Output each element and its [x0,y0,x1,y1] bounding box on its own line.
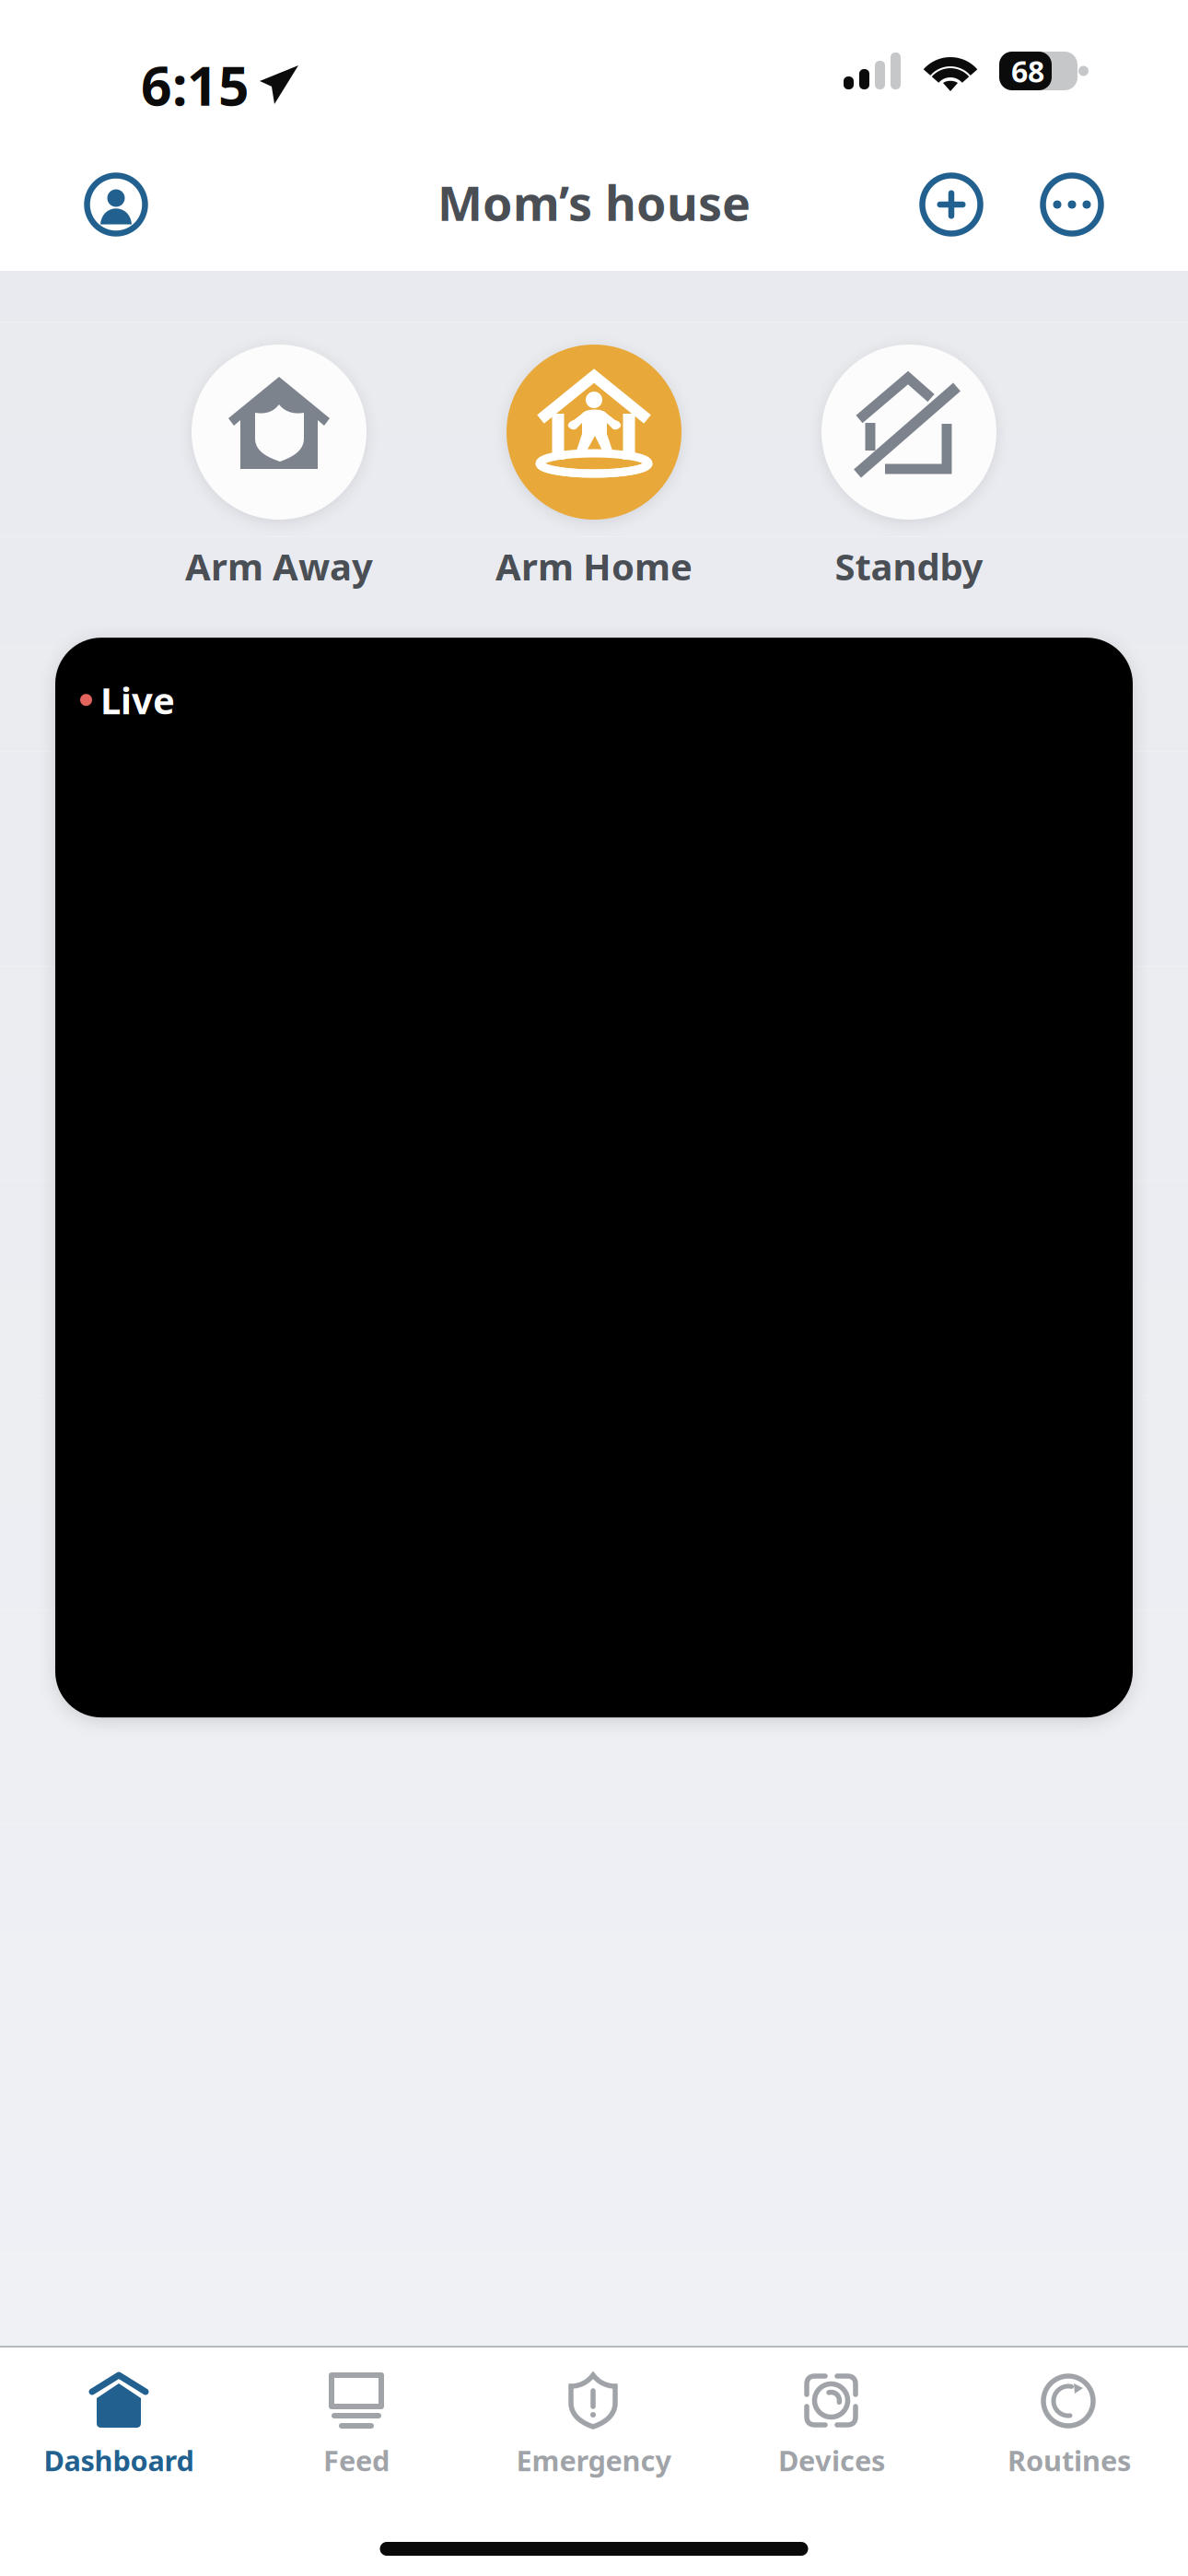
staticText: Standby [835,542,983,591]
staticText: Devices [778,2441,885,2479]
button[interactable]: Account [85,173,147,236]
staticText: Routines [1007,2441,1131,2479]
button[interactable]: Add device [920,173,983,236]
button[interactable]: Standby [751,345,1066,591]
staticText: Feed [323,2441,390,2479]
staticText: Arm Away [185,542,373,591]
button[interactable]: Devices [713,2348,950,2479]
staticText: Live [100,675,175,724]
button[interactable]: More options [1041,173,1103,236]
button[interactable]: Arm Home [437,345,751,591]
button[interactable]: Routines [950,2348,1188,2479]
staticText: Mom’s house [437,170,751,234]
staticText: 68 [1011,51,1044,91]
staticText: Arm Home [495,542,693,591]
button[interactable]: Arm Away [122,345,437,591]
staticText: Dashboard [44,2441,194,2479]
staticText: 6:15 [141,49,250,121]
button[interactable]: Dashboard [0,2348,238,2479]
button[interactable]: Emergency [475,2348,713,2479]
staticText: Emergency [516,2441,672,2479]
button[interactable]: Feed [238,2348,475,2479]
